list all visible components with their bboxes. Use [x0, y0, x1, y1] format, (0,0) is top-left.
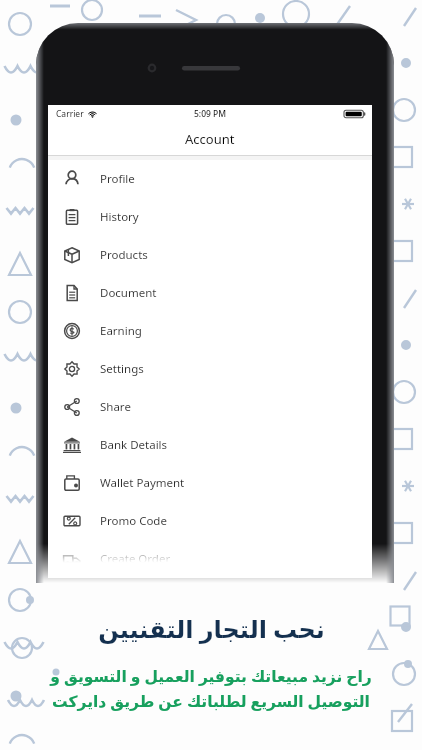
staticText: 5:09 PM [194, 108, 227, 120]
staticText: Share [100, 399, 131, 415]
button[interactable]: Profile [48, 160, 372, 198]
staticText: Create Order [100, 551, 171, 567]
button[interactable]: History [48, 198, 372, 236]
staticText: Bank Details [100, 437, 168, 453]
staticText: نحب التجار التقنيين [98, 612, 325, 645]
staticText: راح نزيد مبيعاتك بتوفير العميل و التسويق… [24, 665, 398, 711]
staticText: Earning [100, 323, 142, 339]
button[interactable]: Products [48, 236, 372, 274]
staticText: History [100, 209, 139, 225]
staticText: Promo Code [100, 513, 167, 529]
button[interactable]: Earning [48, 312, 372, 350]
staticText: Document [100, 285, 157, 301]
button[interactable]: Share [48, 388, 372, 426]
staticText: Account [185, 130, 235, 148]
staticText: Settings [100, 361, 144, 377]
staticText: Products [100, 247, 148, 263]
staticText: Wallet Payment [100, 475, 185, 491]
button[interactable]: Settings [48, 350, 372, 388]
button[interactable]: Document [48, 274, 372, 312]
button[interactable]: Wallet Payment [48, 464, 372, 502]
button[interactable]: Promo Code [48, 502, 372, 540]
staticText: Profile [100, 171, 135, 187]
button[interactable]: Create Order [48, 540, 372, 578]
button[interactable]: Bank Details [48, 426, 372, 464]
staticText: Carrier [56, 108, 84, 120]
